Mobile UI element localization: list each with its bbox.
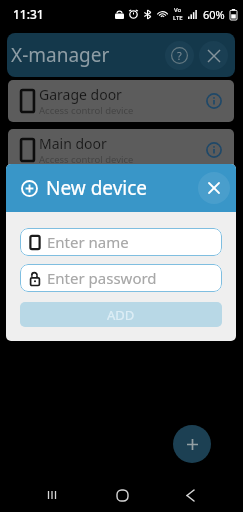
button[interactable]: Help [165, 41, 194, 70]
staticText: 60% [203, 7, 225, 22]
staticText: X-manager [11, 42, 110, 68]
button[interactable]: Enter name [20, 228, 222, 256]
staticText: New device [46, 175, 148, 201]
button[interactable]: Device info [199, 135, 229, 165]
button[interactable]: X-manager [7, 33, 235, 77]
button[interactable]: Recents [32, 478, 72, 512]
staticText: Enter password [47, 268, 157, 288]
staticText: Enter name [47, 232, 129, 252]
staticText: Garage door [39, 85, 122, 104]
staticText: ADD [107, 306, 135, 324]
staticText: Main door [39, 134, 107, 153]
button[interactable]: Garage door [8, 80, 234, 122]
button[interactable]: Main door [8, 129, 234, 171]
button[interactable]: Home [102, 478, 142, 512]
staticText: Access control device [39, 104, 134, 117]
staticText: Vo [174, 6, 182, 14]
staticText: Access control device [39, 153, 134, 166]
staticText: ? [177, 48, 182, 63]
button[interactable]: Enter password [20, 264, 222, 292]
button[interactable]: Device info [199, 86, 229, 116]
staticText: LTE [173, 14, 183, 22]
button[interactable]: Close [199, 41, 228, 70]
staticText: 11:31 [13, 6, 44, 22]
button[interactable]: Add device [173, 425, 211, 463]
button[interactable]: ADD [20, 302, 222, 327]
button[interactable]: Close dialog [198, 172, 230, 204]
button[interactable]: Back [170, 478, 210, 512]
